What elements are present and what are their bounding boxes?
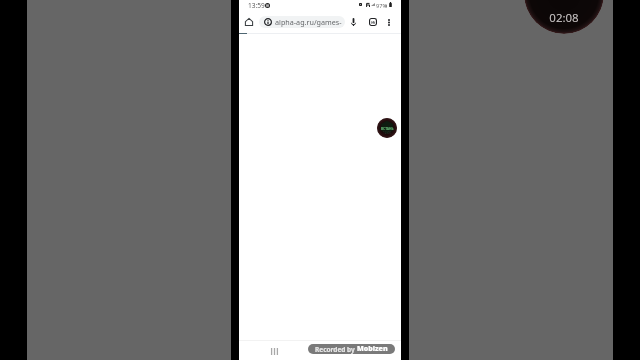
button[interactable]: Stand up reminder [377, 118, 397, 138]
button[interactable]: alpha-ag.ru/games-fr [259, 16, 345, 28]
staticText: 97% [376, 2, 388, 10]
staticText: 02:08 [549, 10, 579, 26]
button[interactable]: Recording timer [524, 0, 604, 34]
staticText: 13:59 [248, 1, 265, 10]
button[interactable]: Voice search [345, 14, 361, 30]
staticText: Recorded by [315, 345, 357, 354]
staticText: 12:00 [383, 131, 392, 135]
staticText: alpha-ag.ru/games-fr [275, 17, 345, 27]
button[interactable]: More options [381, 14, 397, 30]
staticText: Mobizen [357, 344, 388, 354]
button[interactable]: Tabs [365, 14, 381, 30]
button[interactable]: Home [241, 14, 257, 30]
staticText: ВСТАНЬ [381, 127, 394, 131]
button[interactable]: Recent apps [267, 344, 282, 359]
